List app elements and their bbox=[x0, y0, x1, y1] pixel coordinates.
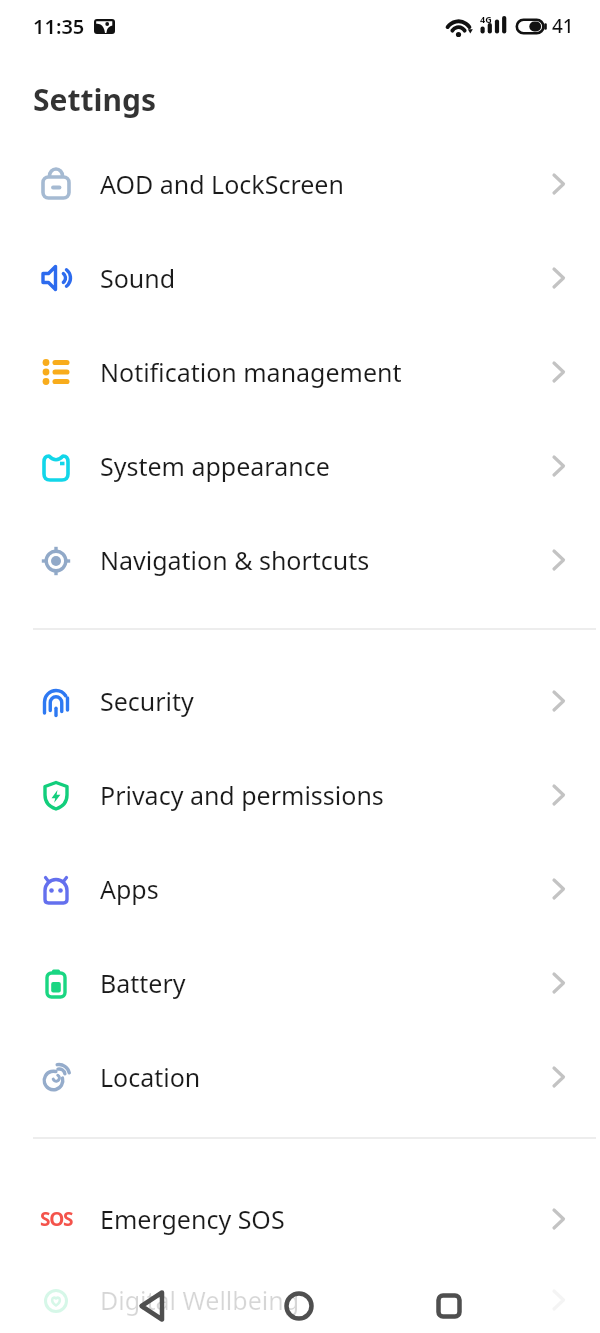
staticText: Apps bbox=[100, 872, 159, 906]
staticText: SOS bbox=[40, 1206, 72, 1232]
staticText: Security bbox=[100, 684, 194, 718]
staticText: Emergency SOS bbox=[100, 1202, 285, 1236]
staticText: Navigation & shortcuts bbox=[100, 543, 370, 577]
staticText: Digital Wellbeing bbox=[100, 1283, 300, 1317]
button[interactable]: Security bbox=[0, 654, 600, 748]
button[interactable]: Notification management bbox=[0, 325, 600, 419]
staticText: Sound bbox=[100, 261, 176, 295]
button[interactable]: Location bbox=[0, 1030, 600, 1124]
button[interactable]: Sound bbox=[0, 231, 600, 325]
button[interactable]: System appearance bbox=[0, 419, 600, 513]
staticText: Notification management bbox=[100, 355, 402, 389]
button[interactable]: Digital Wellbeing bbox=[0, 1266, 600, 1333]
button[interactable]: AOD and LockScreen bbox=[0, 137, 600, 231]
staticText: Privacy and permissions bbox=[100, 778, 384, 812]
button[interactable]: Battery bbox=[0, 936, 600, 1030]
button[interactable]: Privacy and permissions bbox=[0, 748, 600, 842]
staticText: Battery bbox=[100, 966, 186, 1000]
staticText: Location bbox=[100, 1060, 201, 1094]
staticText: 4G bbox=[480, 13, 492, 25]
staticText: 41 bbox=[552, 13, 574, 39]
staticText: 11:35 bbox=[33, 13, 85, 40]
staticText: Settings bbox=[33, 79, 156, 120]
button[interactable]: Navigation & shortcuts bbox=[0, 513, 600, 607]
staticText: System appearance bbox=[100, 449, 330, 483]
staticText: AOD and LockScreen bbox=[100, 167, 344, 201]
button[interactable]: Apps bbox=[0, 842, 600, 936]
button[interactable]: SOS bbox=[0, 1172, 600, 1266]
